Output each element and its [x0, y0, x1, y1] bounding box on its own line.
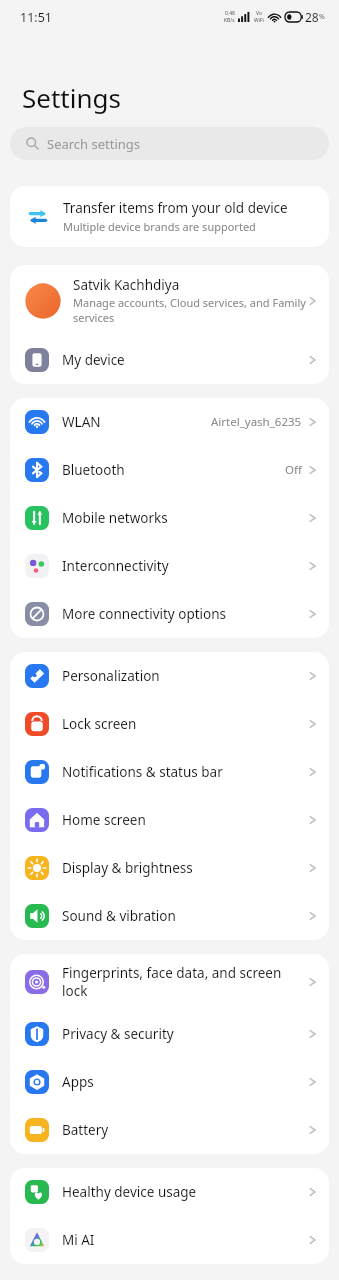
staticText: Transfer items from your old device	[63, 199, 288, 217]
button[interactable]: Search settings	[10, 127, 329, 160]
staticText: Lock screen	[62, 715, 302, 733]
button[interactable]: More connectivity options	[10, 590, 329, 638]
button[interactable]: Healthy device usage	[10, 1168, 329, 1216]
staticText: My device	[62, 351, 302, 369]
staticText: Apps	[62, 1073, 302, 1091]
staticText: Notifications & status bar	[62, 763, 302, 781]
staticText: Satvik Kachhdiya	[73, 276, 180, 294]
staticText: 28	[305, 9, 319, 25]
staticText: Off	[285, 462, 302, 478]
button[interactable]: Battery	[10, 1106, 329, 1154]
staticText: 0.48	[225, 10, 235, 17]
staticText: Interconnectivity	[62, 557, 302, 575]
staticText: Mobile networks	[62, 509, 302, 527]
staticText: Home screen	[62, 811, 302, 829]
button[interactable]: Lock screen	[10, 700, 329, 748]
button[interactable]: Interconnectivity	[10, 542, 329, 590]
staticText: Multiple device brands are supported	[63, 219, 256, 234]
button[interactable]: Apps	[10, 1058, 329, 1106]
button[interactable]: Mobile networks	[10, 494, 329, 542]
button[interactable]: Bluetooth	[10, 446, 329, 494]
staticText: Fingerprints, face data, and screen lock	[62, 964, 302, 1000]
staticText: Vo	[256, 10, 262, 17]
staticText: Airtel_yash_6235	[211, 414, 302, 430]
staticText: Display & brightness	[62, 859, 302, 877]
staticText: Search settings	[47, 135, 141, 153]
staticText: WLAN	[62, 413, 205, 431]
button[interactable]: Mi AI	[10, 1216, 329, 1264]
button[interactable]: Satvik Kachhdiya	[10, 265, 329, 336]
staticText: Privacy & security	[62, 1025, 302, 1043]
button[interactable]: Display & brightness	[10, 844, 329, 892]
button[interactable]: Home screen	[10, 796, 329, 844]
staticText: %	[319, 12, 325, 22]
button[interactable]: Transfer items from your old device	[10, 186, 329, 247]
staticText: Settings	[22, 80, 121, 115]
button[interactable]: Personalization	[10, 652, 329, 700]
staticText: KB/s	[224, 17, 235, 24]
staticText: WiFi	[254, 17, 264, 24]
button[interactable]: My device	[10, 336, 329, 384]
button[interactable]: Fingerprints, face data, and screen lock	[10, 954, 329, 1010]
button[interactable]: Notifications & status bar	[10, 748, 329, 796]
staticText: Battery	[62, 1121, 302, 1139]
button[interactable]: Privacy & security	[10, 1010, 329, 1058]
staticText: More connectivity options	[62, 605, 302, 623]
staticText: Bluetooth	[62, 461, 279, 479]
button[interactable]: WLAN	[10, 398, 329, 446]
button[interactable]: Sound & vibration	[10, 892, 329, 940]
staticText: 11:51	[20, 9, 52, 26]
staticText: Sound & vibration	[62, 907, 302, 925]
staticText: Mi AI	[62, 1231, 302, 1249]
staticText: Personalization	[62, 667, 302, 685]
staticText: Manage accounts, Cloud services, and Fam…	[73, 295, 308, 325]
staticText: Healthy device usage	[62, 1183, 302, 1201]
